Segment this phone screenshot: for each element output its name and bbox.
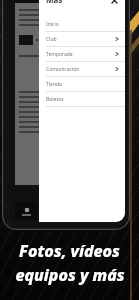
button[interactable]: Tienda — [39, 77, 125, 92]
button[interactable]: Comunicación — [39, 62, 125, 77]
staticText: Tienda — [46, 81, 62, 88]
staticText: Club — [46, 36, 57, 43]
staticText: Boletos — [46, 96, 64, 103]
button[interactable]: Cerrar — [108, 0, 120, 6]
staticText: Fotos, vídeos — [19, 240, 120, 262]
staticText: equipos y más — [15, 264, 125, 286]
button[interactable]: Boletos — [39, 92, 125, 107]
staticText: Más — [46, 0, 63, 5]
staticText: Inicio — [46, 21, 59, 28]
button[interactable]: Temporada — [39, 47, 125, 62]
button[interactable]: Inicio — [39, 17, 125, 32]
staticText: Comunicación — [46, 66, 80, 73]
staticText: Temporada — [46, 51, 73, 58]
button[interactable]: Club — [39, 32, 125, 47]
